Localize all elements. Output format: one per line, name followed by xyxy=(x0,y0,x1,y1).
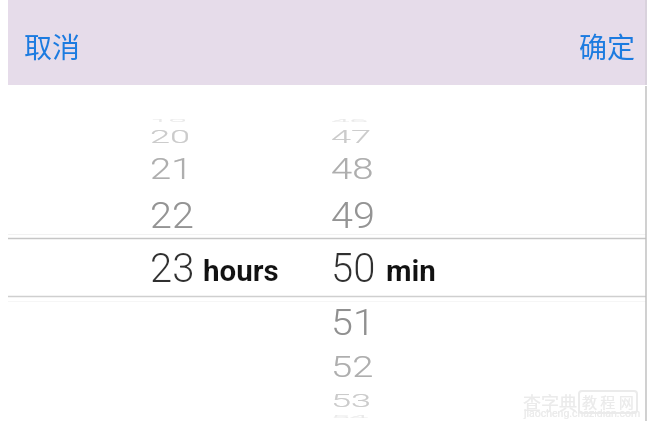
staticText: 23 xyxy=(150,245,195,292)
staticText: 20 xyxy=(150,126,191,147)
staticText: hours xyxy=(203,254,279,289)
staticText: 教 程 网 xyxy=(582,391,634,413)
staticText: jiaocheng.chazidian.com xyxy=(524,407,641,419)
button[interactable]: 取消 xyxy=(24,26,81,67)
staticText: 52 xyxy=(331,350,374,385)
staticText: 取消 xyxy=(24,26,81,67)
staticText: 22 xyxy=(150,193,194,236)
staticText: 19 xyxy=(150,118,188,123)
staticText: 46 xyxy=(331,118,369,123)
staticText: 21 xyxy=(150,152,193,187)
staticText: 53 xyxy=(331,390,372,411)
staticText: 47 xyxy=(331,126,372,147)
staticText: 51 xyxy=(331,300,375,343)
button[interactable]: 确定 xyxy=(579,26,636,67)
staticText: 49 xyxy=(331,193,375,236)
staticText: 54 xyxy=(331,414,369,419)
button[interactable]: Selected 23 hours 50 min xyxy=(0,239,656,297)
staticText: 确定 xyxy=(579,26,636,67)
staticText: 50 xyxy=(331,245,376,292)
staticText: min xyxy=(386,254,436,289)
staticText: 查字典 xyxy=(523,389,577,415)
staticText: 48 xyxy=(331,152,374,187)
